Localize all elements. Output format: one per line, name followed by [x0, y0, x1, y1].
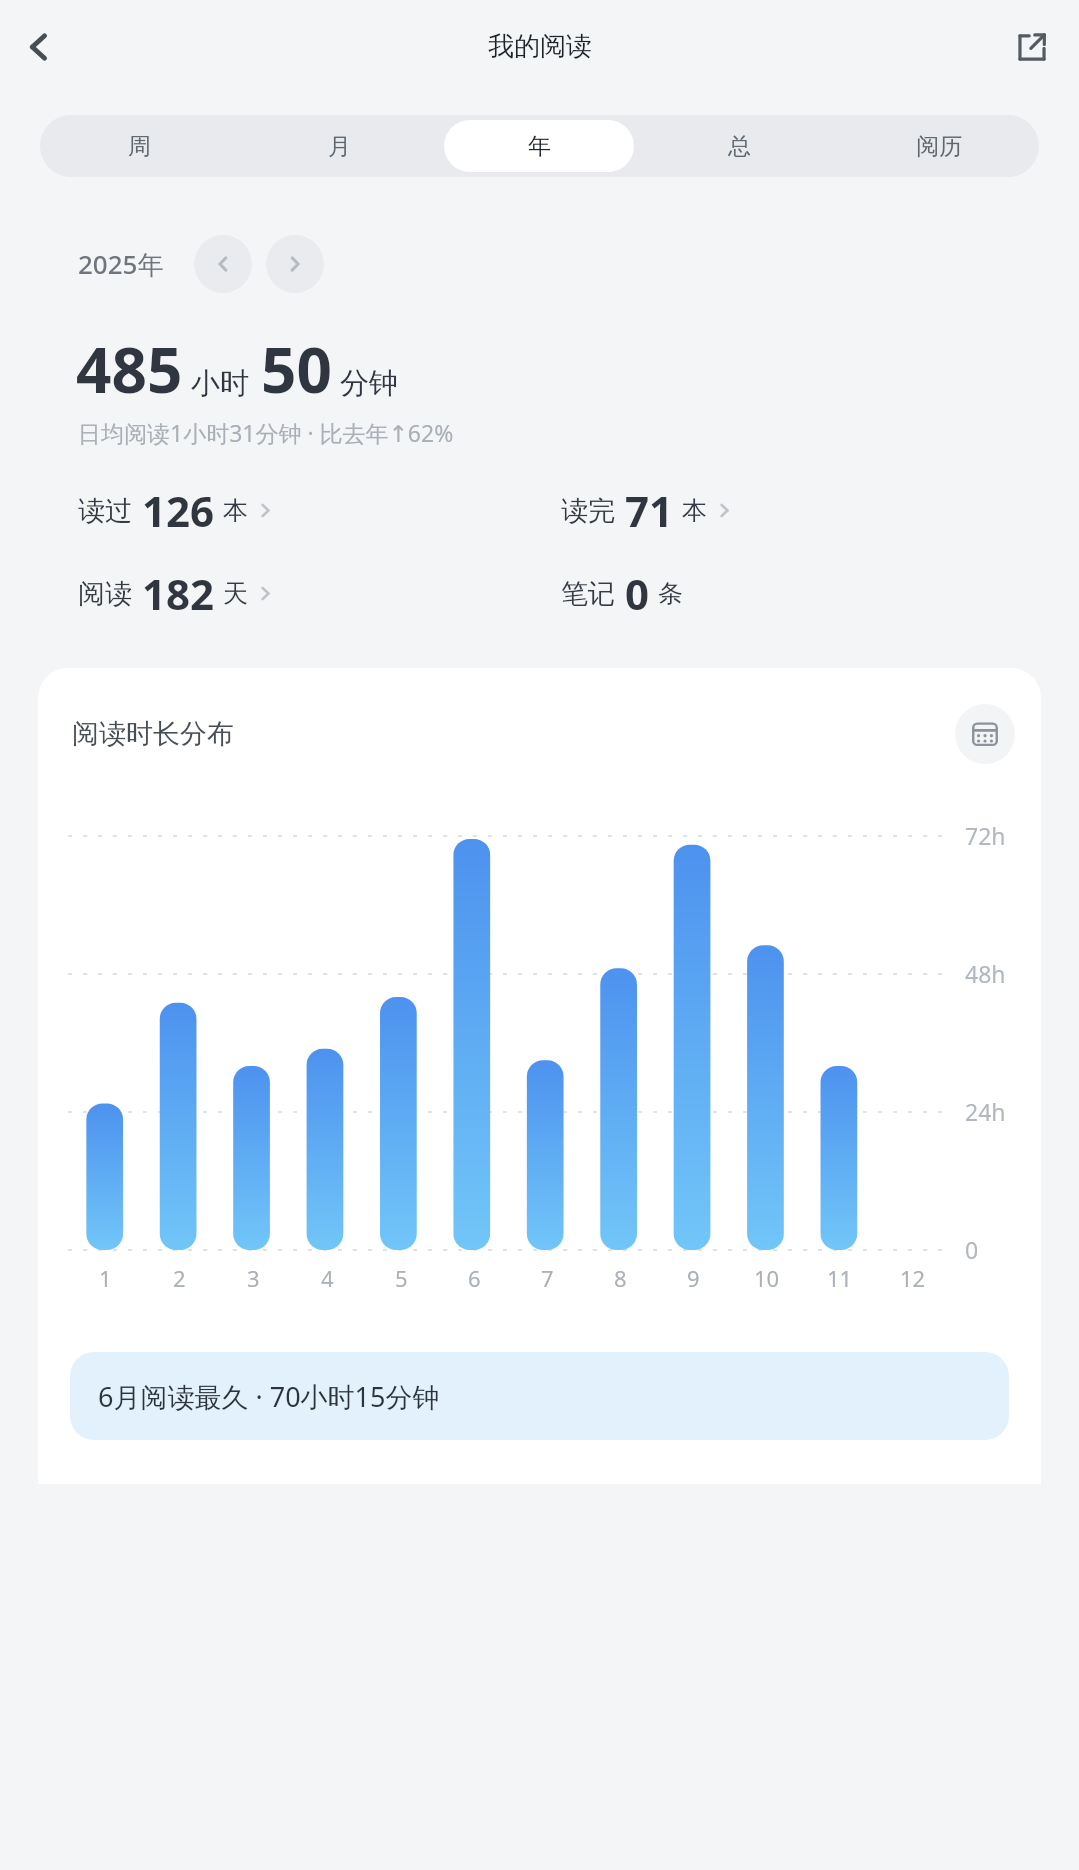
- staticText: 8: [614, 1263, 627, 1293]
- staticText: 126: [142, 482, 215, 539]
- staticText: 阅读: [78, 577, 132, 611]
- button[interactable]: 6月阅读最久 · 70小时15分钟: [70, 1352, 1009, 1440]
- staticText: 9: [687, 1263, 700, 1293]
- staticText: 6月阅读最久 · 70小时15分钟: [98, 1378, 440, 1415]
- staticText: 11: [827, 1263, 853, 1293]
- staticText: 本: [223, 495, 248, 526]
- button[interactable]: Calendar: [955, 704, 1015, 764]
- staticText: 12: [900, 1263, 926, 1293]
- staticText: 24h: [965, 1096, 1006, 1127]
- staticText: 天: [223, 578, 248, 609]
- staticText: 72h: [965, 820, 1006, 851]
- staticText: 6: [468, 1263, 481, 1293]
- staticText: 2: [173, 1263, 186, 1293]
- staticText: 总: [728, 132, 751, 161]
- button[interactable]: 月: [244, 120, 434, 172]
- staticText: 2025年: [78, 246, 164, 282]
- button[interactable]: 周: [45, 120, 234, 172]
- staticText: 71: [625, 482, 674, 539]
- staticText: 读过: [78, 494, 132, 528]
- staticText: 50: [261, 327, 332, 411]
- staticText: 读完: [561, 494, 615, 528]
- staticText: 月: [328, 132, 351, 161]
- staticText: 3: [247, 1263, 260, 1293]
- staticText: 周: [128, 132, 151, 161]
- staticText: 1: [99, 1263, 112, 1293]
- button[interactable]: Next year: [266, 235, 324, 293]
- button[interactable]: 年: [444, 120, 634, 172]
- button[interactable]: 读完: [561, 482, 1079, 539]
- button[interactable]: Share: [1005, 20, 1059, 74]
- staticText: 小时: [191, 365, 249, 402]
- staticText: 本: [682, 495, 707, 526]
- staticText: 5: [395, 1263, 408, 1293]
- staticText: 条: [658, 578, 683, 609]
- button[interactable]: Back: [10, 18, 68, 76]
- staticText: 0: [965, 1234, 979, 1265]
- staticText: 阅读时长分布: [72, 717, 234, 751]
- staticText: 7: [541, 1263, 554, 1293]
- staticText: 年: [528, 132, 551, 161]
- staticText: 182: [142, 565, 215, 622]
- button[interactable]: Previous year: [194, 235, 252, 293]
- staticText: 48h: [965, 958, 1006, 989]
- button[interactable]: 阅历: [844, 120, 1034, 172]
- staticText: 分钟: [340, 365, 398, 402]
- button[interactable]: 阅读: [78, 565, 539, 622]
- staticText: 笔记: [561, 577, 615, 611]
- button[interactable]: 笔记: [561, 565, 1079, 622]
- staticText: 485: [76, 327, 183, 411]
- staticText: 日均阅读1小时31分钟 · 比去年↑62%: [78, 417, 454, 448]
- button[interactable]: 总: [644, 120, 834, 172]
- staticText: 我的阅读: [488, 30, 592, 63]
- staticText: 10: [754, 1263, 780, 1293]
- staticText: 4: [321, 1263, 334, 1293]
- staticText: 0: [625, 565, 650, 622]
- button[interactable]: 读过: [78, 482, 539, 539]
- staticText: 阅历: [916, 132, 962, 161]
